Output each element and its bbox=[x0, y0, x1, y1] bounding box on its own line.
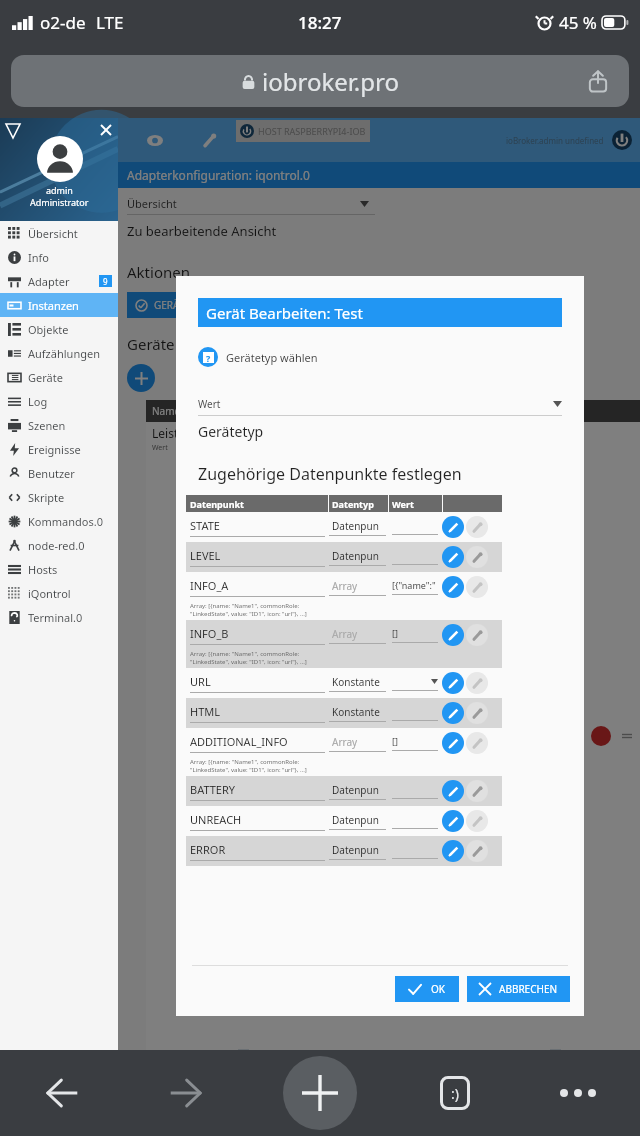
staticText: Datenpun bbox=[332, 813, 379, 827]
button[interactable]: Settings INFO_B bbox=[466, 624, 488, 646]
button[interactable]: Add device bbox=[127, 364, 155, 392]
staticText: Hosts bbox=[28, 562, 58, 577]
button[interactable]: Edit BATTERY bbox=[442, 780, 464, 802]
staticText: iobroker.pro bbox=[262, 65, 399, 98]
button[interactable]: Forward bbox=[160, 1067, 212, 1119]
staticText: HTML bbox=[190, 704, 221, 719]
button[interactable]: Settings BATTERY bbox=[466, 780, 488, 802]
staticText: Szenen bbox=[28, 418, 66, 433]
staticText: URL bbox=[190, 674, 211, 689]
button[interactable]: Close bbox=[98, 122, 114, 138]
button[interactable]: Log bbox=[0, 389, 118, 413]
button[interactable]: Kommandos.0 bbox=[0, 509, 118, 533]
button[interactable]: Settings HTML bbox=[466, 702, 488, 724]
staticText: Leistu bbox=[152, 425, 186, 441]
button[interactable]: Geräte bbox=[0, 365, 118, 389]
button[interactable]: HOST RASPBERRYPI4-IOB bbox=[240, 120, 366, 142]
button[interactable]: GERÄTE bbox=[135, 292, 190, 318]
button[interactable]: Adapter bbox=[0, 269, 118, 293]
staticText: Adapterkonfiguration: iqontrol.0 bbox=[127, 167, 310, 183]
staticText: Datenpun bbox=[332, 549, 379, 563]
staticText: Array: [{name: "Name1", commonRole: bbox=[190, 650, 300, 658]
staticText: Wert bbox=[152, 443, 168, 453]
staticText: Adapter bbox=[28, 274, 70, 289]
button[interactable]: Info bbox=[0, 245, 118, 269]
button[interactable]: OK bbox=[409, 976, 445, 1002]
staticText: ? bbox=[206, 352, 211, 363]
button[interactable]: Settings bbox=[196, 127, 222, 153]
staticText: Benutzer bbox=[28, 466, 75, 481]
button[interactable]: Edit HTML bbox=[442, 702, 464, 724]
staticText: Zu bearbeitende Ansicht bbox=[127, 222, 277, 240]
staticText: Array bbox=[332, 579, 358, 593]
button[interactable]: Share bbox=[583, 66, 613, 96]
button[interactable]: Power bbox=[612, 130, 632, 150]
button[interactable]: Übersicht bbox=[0, 221, 118, 245]
button[interactable]: Settings STATE bbox=[466, 516, 488, 538]
staticText: BATTERY bbox=[190, 782, 236, 797]
button[interactable]: Edit INFO_A bbox=[442, 576, 464, 598]
button[interactable]: Settings URL bbox=[466, 672, 488, 694]
button[interactable]: Edit UNREACH bbox=[442, 810, 464, 832]
button[interactable]: More bbox=[552, 1067, 604, 1119]
button[interactable]: Aufzählungen bbox=[0, 341, 118, 365]
button[interactable]: Ereignisse bbox=[0, 437, 118, 461]
button[interactable]: Settings INFO_A bbox=[466, 576, 488, 598]
staticText: "LinkedState", value: "ID1", icon: "url"… bbox=[190, 610, 307, 618]
staticText: INFO_A bbox=[190, 578, 229, 593]
staticText: HOST RASPBERRYPI4-IOB bbox=[258, 125, 366, 137]
button[interactable]: Objekte bbox=[0, 317, 118, 341]
button[interactable]: Settings ERROR bbox=[466, 840, 488, 862]
button[interactable]: Skripte bbox=[0, 485, 118, 509]
staticText: o2-de bbox=[40, 11, 86, 34]
button[interactable]: Edit ERROR bbox=[442, 840, 464, 862]
staticText: Übersicht bbox=[127, 196, 177, 211]
button[interactable]: Hosts bbox=[0, 557, 118, 581]
button[interactable]: Edit URL bbox=[442, 672, 464, 694]
staticText: Array bbox=[332, 627, 358, 641]
button[interactable]: node-red.0 bbox=[0, 533, 118, 557]
button[interactable]: Terminal.0 bbox=[0, 605, 118, 629]
staticText: Log bbox=[28, 394, 48, 409]
staticText: ABBRECHEN bbox=[499, 982, 558, 996]
button[interactable]: Benutzer bbox=[0, 461, 118, 485]
staticText: Array bbox=[332, 735, 358, 749]
button[interactable]: Szenen bbox=[0, 413, 118, 437]
button[interactable]: Settings LEVEL bbox=[466, 546, 488, 568]
button[interactable]: ? bbox=[198, 347, 318, 367]
button[interactable]: iQontrol bbox=[0, 581, 118, 605]
staticText: "LinkedState", value: "ID1", icon: "url"… bbox=[190, 658, 307, 666]
button[interactable]: Back bbox=[36, 1067, 88, 1119]
staticText: Datenpun bbox=[332, 519, 379, 533]
button[interactable]: Wert bbox=[198, 397, 562, 411]
button[interactable]: Edit INFO_B bbox=[442, 624, 464, 646]
button[interactable]: New Tab bbox=[283, 1056, 357, 1130]
staticText: INFO_B bbox=[190, 626, 229, 641]
button[interactable]: Übersicht bbox=[127, 196, 375, 211]
button[interactable]: Settings UNREACH bbox=[466, 810, 488, 832]
staticText: Datenpun bbox=[332, 783, 379, 797]
staticText: Datenpun bbox=[332, 843, 379, 857]
button[interactable]: iobroker.pro bbox=[11, 55, 629, 107]
button[interactable]: ABBRECHEN bbox=[479, 976, 558, 1002]
staticText: Geräte bbox=[127, 334, 175, 354]
button[interactable]: Bookmarks bbox=[429, 1067, 481, 1119]
staticText: admin bbox=[46, 184, 73, 196]
button[interactable]: Instanzen bbox=[0, 293, 118, 317]
staticText: Skripte bbox=[28, 490, 65, 505]
staticText: 9 bbox=[103, 276, 108, 287]
staticText: Übersicht bbox=[28, 226, 78, 241]
button[interactable]: Edit STATE bbox=[442, 516, 464, 538]
button[interactable]: Settings ADDITIONAL_INFO bbox=[466, 732, 488, 754]
button[interactable]: Preview bbox=[142, 127, 168, 153]
staticText: Datenpunkt bbox=[190, 498, 244, 510]
staticText: Gerätetyp wählen bbox=[226, 350, 318, 365]
button[interactable]: Leistu bbox=[146, 422, 640, 1050]
staticText: Konstante bbox=[332, 675, 380, 689]
button[interactable]: Edit LEVEL bbox=[442, 546, 464, 568]
button[interactable]: Edit ADDITIONAL_INFO bbox=[442, 732, 464, 754]
button[interactable]: Delete bbox=[591, 726, 611, 746]
